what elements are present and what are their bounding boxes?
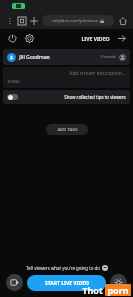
button[interactable]: Close — [5, 31, 19, 45]
button[interactable]: More options — [4, 15, 16, 27]
button[interactable]: New tab — [28, 15, 40, 27]
button[interactable]: START LIVE VIDEO — [27, 275, 106, 291]
staticText: porn — [107, 284, 129, 296]
button[interactable]: Settings — [22, 31, 36, 45]
button[interactable]: Jill Goodman — [3, 49, 130, 65]
button[interactable]: Tabs — [16, 15, 28, 27]
button[interactable]: Effects — [110, 274, 127, 291]
staticText: onlyfans.com/johneass — [52, 18, 98, 24]
staticText: Jill Goodman — [19, 54, 50, 61]
staticText: Friends — [101, 54, 116, 60]
button[interactable]: onlyfans.com/johneass — [42, 15, 114, 26]
staticText: Thot — [82, 284, 103, 296]
button[interactable]: Home — [117, 15, 129, 27]
staticText: Show collected tips to viewers — [64, 94, 126, 100]
button[interactable]: Show collected tips to viewers — [3, 90, 130, 104]
staticText: Add stream description... — [69, 70, 126, 77]
button[interactable]: Add stream description... — [3, 67, 130, 88]
staticText: DONE — [7, 79, 20, 85]
staticText: Tell viewers what you're going to do — [26, 265, 100, 271]
staticText: ADD TAGS — [57, 127, 78, 133]
button[interactable]: Next — [114, 31, 128, 45]
button[interactable]: Audience — [118, 53, 126, 61]
staticText: START LIVE VIDEO — [45, 280, 89, 287]
button[interactable]: Flip camera — [6, 274, 23, 291]
button[interactable]: ADD TAGS — [46, 124, 88, 135]
staticText: LIVE VIDEO — [81, 35, 110, 42]
